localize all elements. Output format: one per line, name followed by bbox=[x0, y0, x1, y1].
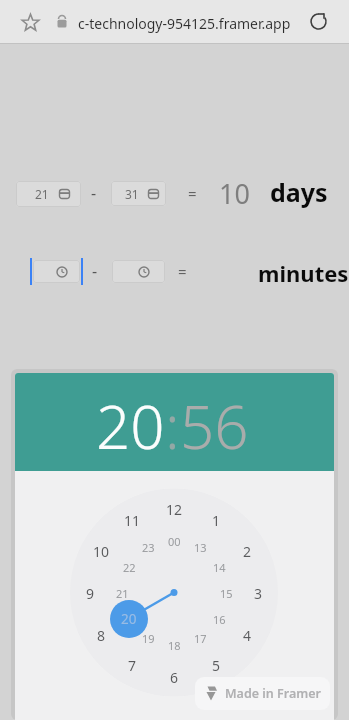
staticText: 11 bbox=[124, 511, 141, 530]
staticText: - bbox=[92, 260, 98, 282]
staticText: : bbox=[165, 385, 180, 467]
staticText: 8 bbox=[97, 626, 106, 645]
button[interactable] bbox=[110, 600, 148, 638]
button[interactable] bbox=[18, 10, 43, 35]
staticText: 1 bbox=[212, 511, 221, 530]
staticText: 10 bbox=[219, 175, 250, 212]
staticText: 13 bbox=[194, 540, 207, 555]
staticText: 6 bbox=[170, 668, 179, 687]
staticText: 20 bbox=[96, 385, 165, 467]
staticText: = bbox=[178, 261, 187, 281]
staticText: = bbox=[188, 183, 197, 203]
button[interactable] bbox=[112, 260, 165, 283]
button[interactable] bbox=[33, 260, 80, 283]
staticText: c-technology-954125.framer.app bbox=[78, 14, 291, 33]
staticText: days bbox=[270, 175, 328, 209]
staticText: 31 bbox=[125, 186, 139, 202]
staticText: 20 bbox=[121, 610, 137, 628]
button[interactable]: Made in Framer bbox=[195, 677, 330, 710]
staticText: 56 bbox=[180, 385, 249, 467]
staticText: 16 bbox=[213, 612, 226, 627]
staticText: Made in Framer bbox=[225, 685, 322, 702]
staticText: 4 bbox=[243, 626, 252, 645]
staticText: 14 bbox=[213, 560, 226, 575]
staticText: 7 bbox=[128, 656, 137, 675]
staticText: 15 bbox=[220, 586, 233, 601]
button[interactable] bbox=[111, 181, 166, 206]
staticText: 21 bbox=[35, 186, 49, 202]
staticText: 5 bbox=[212, 656, 221, 675]
staticText: 21 bbox=[116, 586, 129, 601]
button[interactable] bbox=[16, 181, 81, 207]
staticText: 17 bbox=[194, 631, 207, 646]
staticText: 23 bbox=[142, 540, 155, 555]
staticText: 18 bbox=[168, 638, 181, 653]
staticText: - bbox=[91, 182, 97, 204]
staticText: 3 bbox=[254, 584, 263, 603]
staticText: minutes bbox=[258, 258, 349, 288]
staticText: 22 bbox=[123, 560, 136, 575]
staticText: 9 bbox=[86, 584, 95, 603]
staticText: 19 bbox=[142, 631, 155, 646]
staticText: 2 bbox=[243, 542, 252, 561]
staticText: 12 bbox=[166, 500, 183, 519]
button[interactable] bbox=[306, 9, 331, 34]
staticText: 10 bbox=[93, 542, 110, 561]
staticText: 00 bbox=[168, 534, 181, 549]
